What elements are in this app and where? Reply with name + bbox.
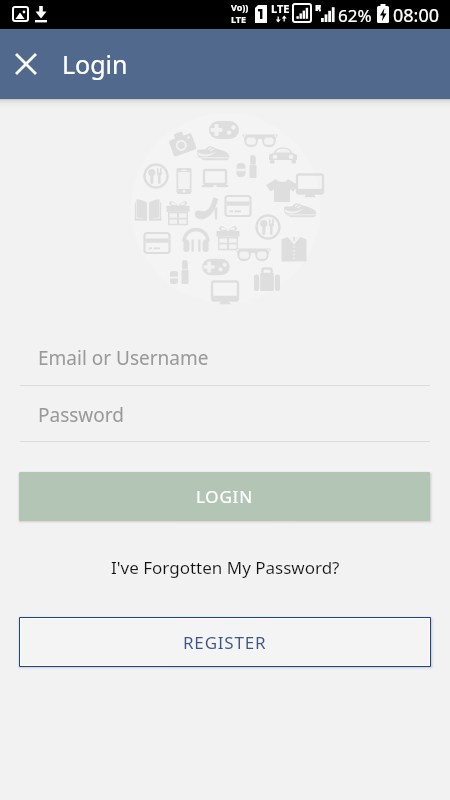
button[interactable]: Close [8, 46, 44, 82]
staticText: I've Forgotten My Password? [111, 556, 340, 579]
staticText: Password [38, 402, 124, 428]
button[interactable]: REGISTER [20, 618, 430, 666]
staticText: Vo)) [231, 1, 249, 13]
staticText: LTE [231, 13, 247, 25]
staticText: REGISTER [183, 631, 267, 654]
button[interactable]: LOGIN [19, 472, 430, 521]
staticText: LTE [271, 1, 290, 16]
staticText: 62% [338, 4, 372, 27]
staticText: 08:00 [393, 3, 440, 28]
staticText: Email or Username [38, 345, 209, 371]
staticText: LOGIN [196, 485, 253, 508]
button[interactable]: I've Forgotten My Password? [0, 556, 450, 579]
staticText: R [315, 1, 321, 13]
staticText: Login [62, 47, 128, 81]
